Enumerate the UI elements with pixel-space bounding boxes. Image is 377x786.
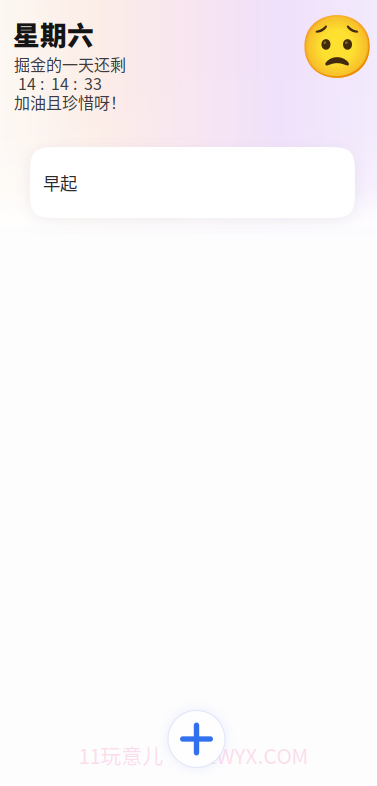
staticText: 星期六 — [13, 14, 94, 53]
button[interactable]: Add — [153, 702, 223, 772]
staticText: 14 : 14 : 33 — [14, 71, 102, 95]
staticText: 😟 — [299, 11, 375, 83]
staticText: 掘金的一天还剩 — [14, 52, 126, 76]
staticText: 早起 — [43, 170, 77, 195]
button[interactable]: 早起 — [30, 147, 355, 218]
staticText: 加油且珍惜呀！ — [14, 90, 126, 114]
staticText: 11玩意儿 · 11WYX.COM — [78, 740, 308, 770]
